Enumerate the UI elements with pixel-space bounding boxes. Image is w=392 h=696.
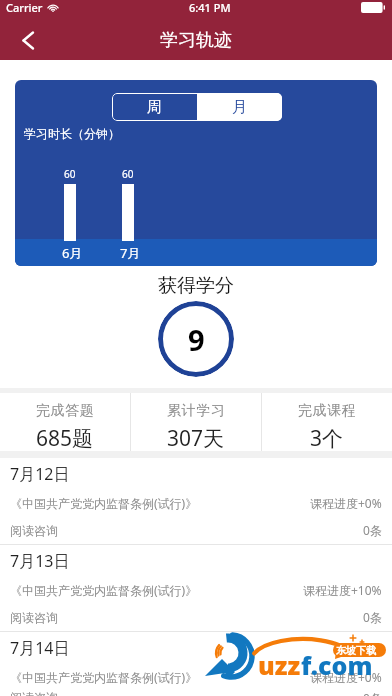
staticText: 0条 (363, 609, 382, 625)
staticText: 6月 (62, 244, 83, 262)
staticText: 307天 (167, 424, 225, 451)
button[interactable]: Back (8, 20, 48, 60)
button[interactable]: 完成答题 (0, 393, 130, 451)
staticText: 3个 (310, 424, 344, 451)
staticText: 0条 (363, 522, 382, 538)
button[interactable]: 周 (112, 93, 197, 121)
staticText: 累计学习 (167, 402, 226, 420)
staticText: uzz (258, 648, 301, 682)
staticText: 课程进度+0% (310, 669, 382, 685)
staticText: 完成答题 (36, 402, 95, 420)
staticText: 月 (232, 98, 247, 117)
staticText: 完成课程 (298, 402, 357, 420)
staticText: 6:41 PM (189, 0, 231, 15)
staticText: 《中国共产党党内监督条例(试行)》 (10, 669, 198, 685)
staticText: 《中国共产党党内监督条例(试行)》 (10, 582, 198, 598)
staticText: 60 (122, 167, 134, 181)
staticText: 7月13日 (10, 550, 70, 572)
staticText: 9 (188, 320, 205, 359)
button[interactable]: 7月12日 (0, 458, 392, 544)
staticText: 阅读咨询 (10, 523, 58, 538)
staticText: 7月 (120, 244, 141, 262)
staticText: f.com (301, 648, 373, 682)
staticText: 阅读咨询 (10, 690, 58, 696)
staticText: 课程进度+10% (303, 582, 382, 598)
staticText: 685题 (36, 424, 94, 451)
staticText: 东坡下载 (336, 644, 376, 657)
button[interactable]: 完成课程 (262, 393, 392, 451)
staticText: 《中国共产党党内监督条例(试行)》 (10, 495, 198, 511)
staticText: 课程进度+0% (310, 495, 382, 511)
staticText: 阅读咨询 (10, 610, 58, 625)
button[interactable]: 累计学习 (131, 393, 261, 451)
staticText: 学习时长（分钟） (24, 126, 120, 141)
staticText: 0条 (363, 690, 382, 696)
staticText: 7月12日 (10, 463, 70, 485)
button[interactable]: 7月13日 (0, 545, 392, 631)
staticText: 7月14日 (10, 637, 70, 659)
staticText: 周 (147, 98, 162, 117)
button[interactable]: 月 (197, 93, 282, 121)
staticText: 学习轨迹 (160, 29, 232, 52)
button[interactable]: 7月14日 (0, 632, 392, 696)
staticText: 获得学分 (158, 274, 234, 298)
staticText: Carrier (6, 0, 43, 15)
staticText: 60 (64, 167, 76, 181)
